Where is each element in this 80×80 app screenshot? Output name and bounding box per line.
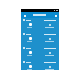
button[interactable]: Navigate up bbox=[23, 14, 26, 17]
button[interactable] bbox=[21, 46, 59, 60]
button[interactable] bbox=[21, 60, 59, 70]
button[interactable] bbox=[21, 18, 59, 32]
button[interactable]: More options bbox=[54, 14, 57, 17]
button[interactable] bbox=[21, 32, 59, 46]
